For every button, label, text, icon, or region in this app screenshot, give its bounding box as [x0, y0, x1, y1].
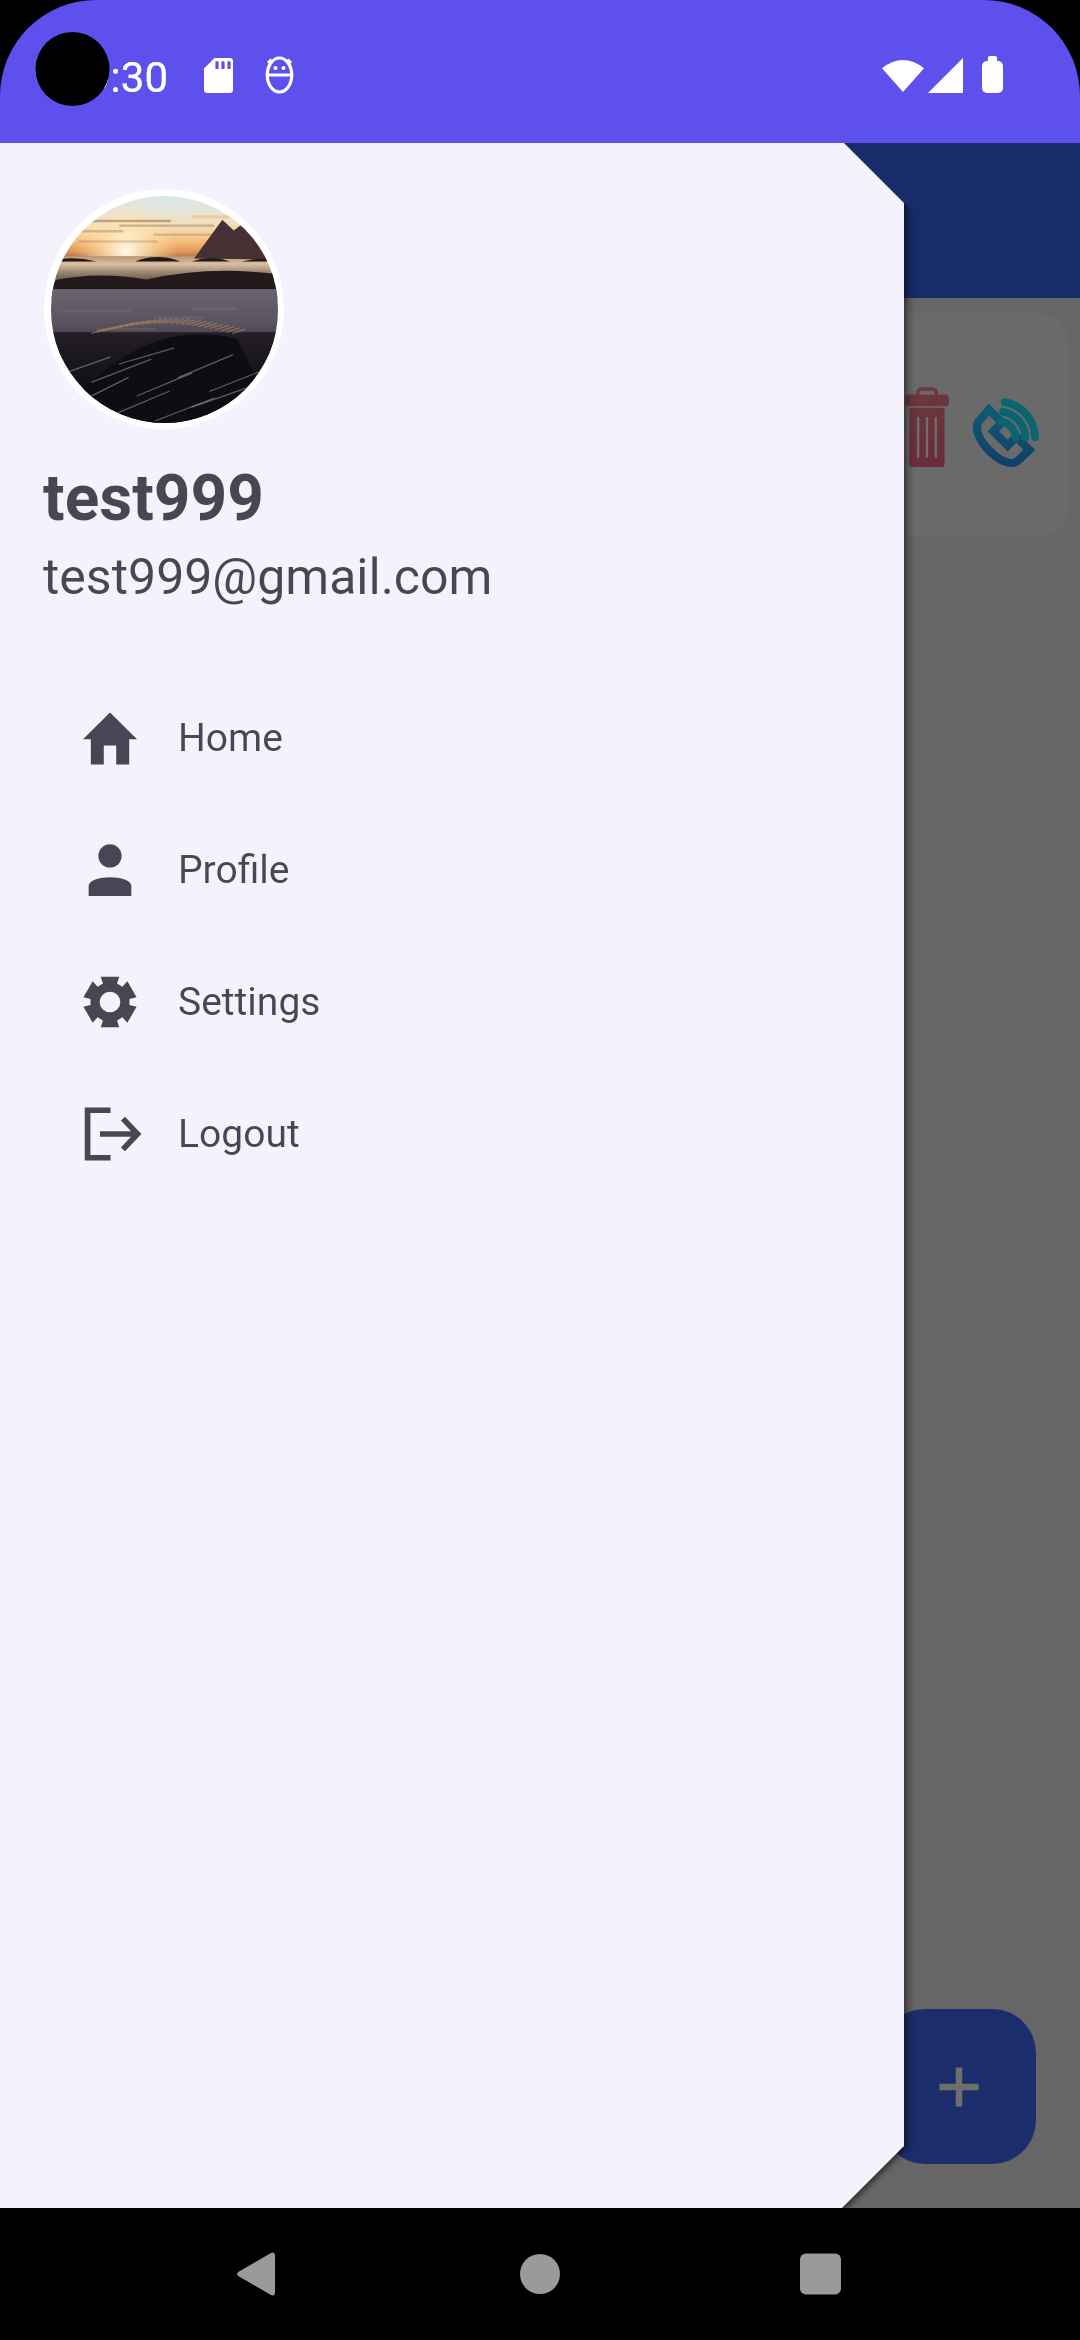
staticText: 9:30 [87, 53, 168, 102]
staticText: Settings [178, 979, 321, 1025]
button[interactable]: Home [0, 672, 904, 804]
button[interactable]: Back [200, 2208, 320, 2340]
button[interactable]: Logout [0, 1068, 904, 1200]
staticText: Profile [178, 847, 290, 893]
staticText: test999@gmail.com [43, 548, 493, 607]
staticText: Home [178, 715, 283, 761]
staticText: Logout [178, 1111, 300, 1157]
button[interactable]: Profile [0, 804, 904, 936]
button[interactable]: Home [480, 2208, 600, 2340]
button[interactable]: Settings [0, 936, 904, 1068]
button[interactable]: Recent apps [760, 2208, 880, 2340]
button[interactable]: Add [881, 2009, 1036, 2164]
staticText: test999 [43, 461, 264, 536]
